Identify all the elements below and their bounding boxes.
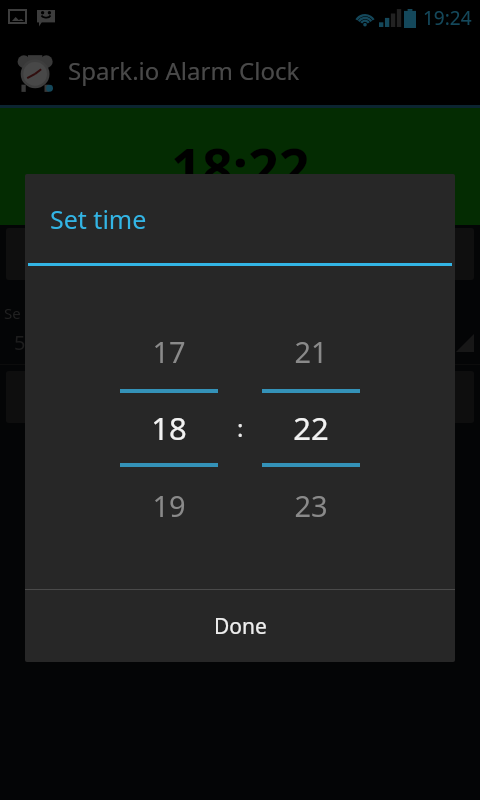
- staticText: 19:24: [423, 5, 472, 31]
- button[interactable]: 21: [262, 313, 360, 389]
- button[interactable]: 17: [120, 313, 218, 389]
- staticText: 21: [294, 332, 328, 371]
- staticText: 18:22: [171, 130, 310, 204]
- staticText: Done: [214, 612, 267, 641]
- staticText: 17: [152, 332, 186, 371]
- staticText: 19: [152, 486, 186, 525]
- button[interactable]: Done: [25, 590, 455, 662]
- staticText: Set time: [50, 202, 147, 236]
- button[interactable]: 23: [262, 467, 360, 543]
- button[interactable]: 19: [120, 467, 218, 543]
- other: Screenshot: [8, 8, 28, 28]
- staticText: 18: [151, 407, 187, 449]
- button[interactable]: 18: [120, 393, 218, 463]
- staticText: Spark.io Alarm Clock: [68, 54, 300, 87]
- staticText: Se: [4, 303, 21, 323]
- staticText: 23: [294, 486, 328, 525]
- staticText: 5: [14, 329, 26, 356]
- button[interactable]: 22: [262, 393, 360, 463]
- button[interactable]: [6, 228, 474, 280]
- other: Messages: [36, 8, 56, 28]
- staticText: 22: [293, 407, 329, 449]
- button[interactable]: [6, 371, 474, 423]
- staticText: :: [237, 411, 244, 444]
